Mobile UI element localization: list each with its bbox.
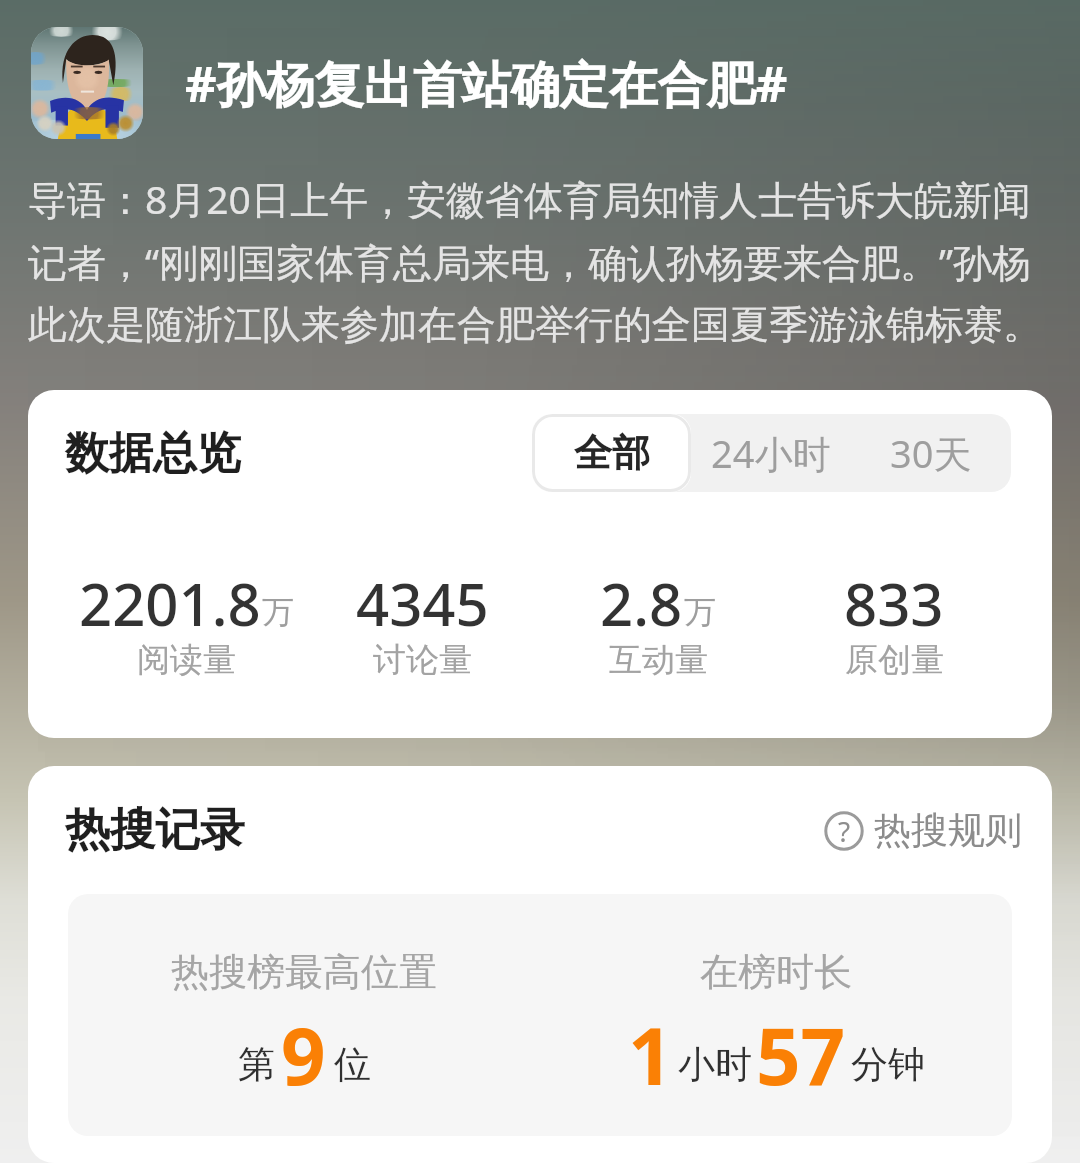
staticText: 讨论量: [373, 639, 472, 681]
staticText: 30天: [890, 427, 972, 479]
staticText: 833: [844, 564, 944, 643]
button[interactable]: 4345: [304, 564, 540, 685]
staticText: 第: [238, 1041, 275, 1088]
other: Topic avatar: [31, 27, 143, 139]
staticText: 互动量: [609, 639, 708, 681]
button[interactable]: 2201.8: [68, 564, 304, 685]
staticText: 57: [756, 1002, 846, 1108]
staticText: 1: [628, 1002, 673, 1108]
staticText: 阅读量: [137, 639, 236, 681]
staticText: 导语：8月20日上午，安徽省体育局知情人士告诉大皖新闻 记者，“刚刚国家体育总局…: [28, 172, 1042, 349]
staticText: 2.8: [600, 564, 683, 643]
staticText: 2201.8: [79, 564, 261, 643]
button[interactable]: 2.8: [540, 564, 776, 685]
staticText: 小时: [678, 1041, 752, 1088]
staticText: #孙杨复出首站确定在合肥#: [185, 50, 788, 117]
staticText: 万: [262, 592, 294, 632]
staticText: 热搜榜最高位置: [171, 948, 437, 996]
staticText: 位: [334, 1041, 371, 1088]
staticText: 分钟: [851, 1041, 925, 1088]
staticText: ?: [838, 812, 851, 850]
button[interactable]: Topic avatar: [0, 0, 1080, 139]
button[interactable]: 30天: [851, 414, 1011, 492]
staticText: 万: [684, 592, 716, 632]
button[interactable]: 833: [776, 564, 1012, 685]
staticText: 热搜规则: [874, 807, 1022, 854]
staticText: 24小时: [711, 427, 831, 479]
staticText: 全部: [574, 429, 650, 477]
button[interactable]: Hot search rules help: [824, 807, 1022, 854]
staticText: 热搜记录: [65, 802, 245, 859]
other: Hot search rules help: [824, 811, 864, 851]
staticText: 原创量: [845, 639, 944, 681]
staticText: 数据总览: [65, 426, 241, 481]
button[interactable]: 全部: [532, 414, 691, 492]
button[interactable]: 24小时: [691, 414, 851, 492]
staticText: 在榜时长: [700, 948, 852, 996]
staticText: 4345: [356, 564, 489, 643]
staticText: 9: [281, 1002, 326, 1108]
